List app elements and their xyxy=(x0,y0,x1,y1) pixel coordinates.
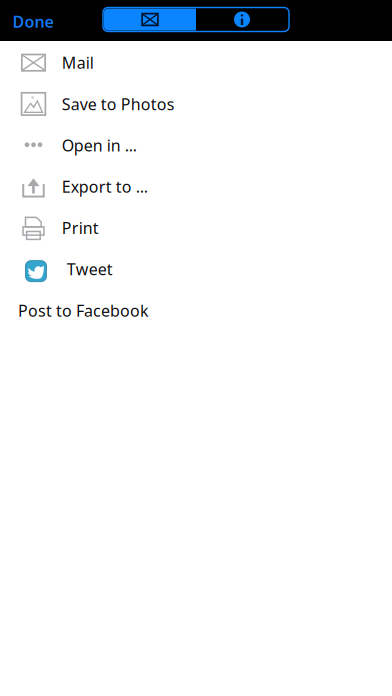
button[interactable]: Post to Facebook xyxy=(0,291,392,332)
button[interactable]: Tweet xyxy=(0,249,392,291)
button[interactable]: Save to Photos xyxy=(0,84,392,126)
staticText: Done xyxy=(12,11,53,32)
button[interactable]: Mail xyxy=(0,43,392,84)
button[interactable]: Mail xyxy=(104,8,196,30)
button[interactable]: Open in ... xyxy=(0,126,392,167)
button[interactable]: Info xyxy=(196,8,288,30)
button[interactable]: Done xyxy=(0,2,63,39)
staticText: Mail xyxy=(62,52,94,73)
staticText: Save to Photos xyxy=(62,93,175,114)
staticText: Export to ... xyxy=(62,176,148,197)
staticText: Open in ... xyxy=(62,135,137,156)
staticText: Print xyxy=(62,217,99,238)
staticText: Post to Facebook xyxy=(18,300,149,321)
button[interactable]: Print xyxy=(0,208,392,249)
button[interactable]: Export to ... xyxy=(0,167,392,208)
staticText: Tweet xyxy=(67,258,113,280)
